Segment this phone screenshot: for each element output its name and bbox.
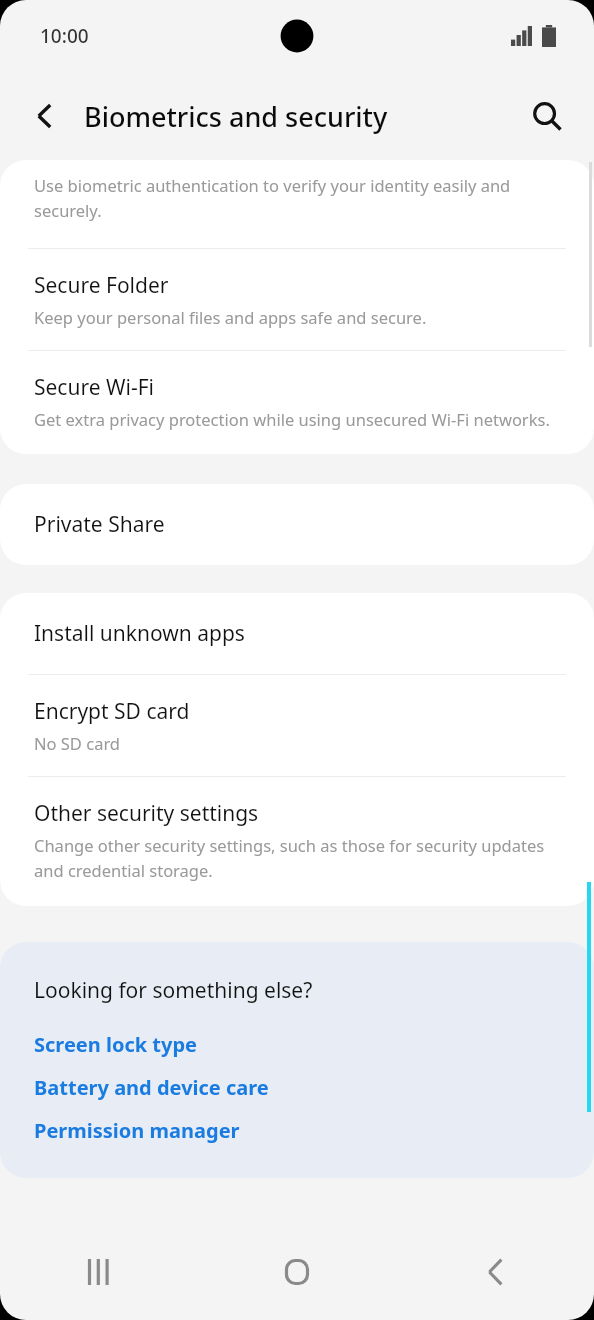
button[interactable]: Recent apps (39, 1232, 159, 1312)
button[interactable]: Permission manager (34, 1117, 240, 1144)
button[interactable]: Back (435, 1232, 555, 1312)
staticText: Private Share (34, 510, 165, 539)
button[interactable]: Battery and device care (34, 1074, 269, 1101)
button[interactable]: Private Share (0, 484, 594, 565)
staticText: 10:00 (40, 23, 89, 49)
staticText: Encrypt SD card (34, 697, 190, 726)
button[interactable]: Other security settings (0, 777, 594, 906)
staticText: No SD card (34, 732, 121, 754)
staticText: Install unknown apps (34, 619, 245, 648)
staticText: Screen lock type (34, 1031, 198, 1058)
staticText: Looking for something else? (34, 976, 313, 1005)
staticText: Battery and device care (34, 1074, 269, 1101)
button[interactable]: Use biometric authentication to verify y… (0, 160, 594, 248)
button[interactable]: Encrypt SD card (0, 675, 594, 776)
button[interactable]: Home (237, 1232, 357, 1312)
staticText: Get extra privacy protection while using… (34, 408, 550, 430)
staticText: Secure Folder (34, 271, 169, 300)
staticText: Change other security settings, such as … (34, 834, 554, 882)
button[interactable]: Secure Folder (0, 249, 594, 350)
button[interactable]: Secure Wi-Fi (0, 351, 594, 454)
button[interactable]: Install unknown apps (0, 593, 594, 674)
staticText: Other security settings (34, 799, 259, 828)
staticText: Secure Wi-Fi (34, 373, 155, 402)
button[interactable]: Back (16, 87, 74, 145)
staticText: Biometrics and security (84, 98, 388, 135)
staticText: Keep your personal files and apps safe a… (34, 306, 427, 328)
staticText: Use biometric authentication to verify y… (34, 174, 554, 222)
staticText: Permission manager (34, 1117, 240, 1144)
button[interactable]: Screen lock type (34, 1031, 198, 1058)
button[interactable]: Search (518, 87, 576, 145)
